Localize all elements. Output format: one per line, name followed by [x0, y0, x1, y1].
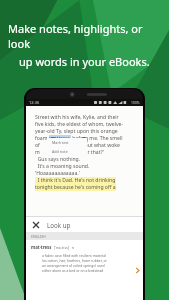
staticText: Street with his wife, Kylie, and their	[35, 114, 119, 121]
staticText: Mark text	[52, 140, 69, 145]
staticText: ENGLISH	[31, 234, 46, 239]
staticText: year-old Ty, slept upon this orange	[35, 128, 118, 135]
staticText: of up but what woke	[35, 142, 120, 149]
staticText: 12:36	[29, 100, 40, 105]
button[interactable]: Next definition	[132, 265, 142, 275]
button[interactable]: Close look up	[30, 219, 41, 230]
staticText: before me. The smell	[71, 135, 123, 142]
staticText: Add note	[52, 149, 68, 154]
staticText: mattress	[49, 135, 71, 142]
staticText: Gus says nothing.	[35, 156, 81, 163]
staticText: m r that?'	[35, 149, 104, 156]
staticText: 100%	[131, 100, 140, 105]
button[interactable]: Close look up	[26, 217, 143, 232]
staticText: Make notes, highlights, or look	[8, 21, 161, 51]
staticText: a fabric case filled with resilient mate…	[42, 253, 106, 258]
button[interactable]: Add note	[47, 147, 87, 156]
staticText: an arrangement of coiled springs) used	[42, 263, 105, 268]
staticText: up words in your eBooks.	[19, 54, 150, 69]
staticText: five kids, the eldest of whom, twelve-	[35, 121, 124, 128]
staticText: tonight because he's coming off a	[35, 184, 116, 191]
staticText: [ˈma-trəs]	[54, 245, 70, 250]
staticText: foam	[35, 135, 49, 142]
staticText: Look up	[47, 221, 71, 229]
staticText: I think it's Dad. He's not drinking	[35, 177, 116, 184]
staticText: mat·tress	[31, 244, 52, 250]
button[interactable]: Mark text	[47, 138, 87, 147]
staticText: It's a moaning sound.	[35, 163, 90, 170]
staticText: n	[72, 245, 75, 250]
staticText: either alone as a bed or on a bedstead	[42, 268, 104, 273]
staticText: 'Hoaaaaaaaaaaaa.'	[35, 170, 80, 177]
staticText: (as cotton, hair, feathers, foam rubber,…	[42, 258, 107, 263]
